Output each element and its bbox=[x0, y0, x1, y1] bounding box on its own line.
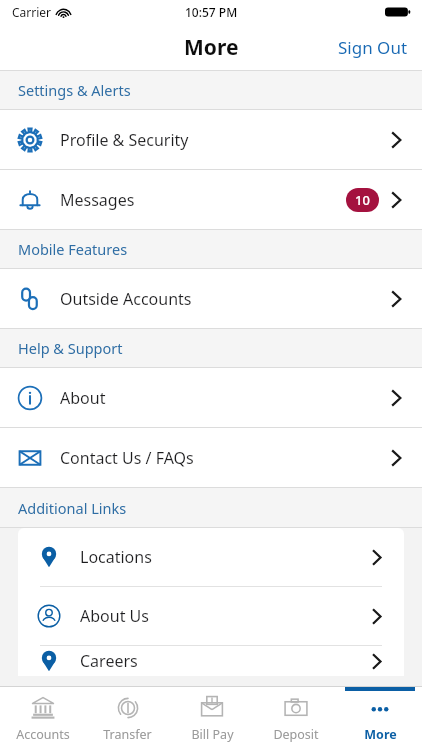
other: More bbox=[367, 695, 393, 721]
staticText: Careers bbox=[80, 650, 138, 672]
staticText: Additional Links bbox=[18, 498, 127, 518]
button[interactable]: Deposit bbox=[254, 687, 338, 750]
button[interactable]: About bbox=[0, 368, 422, 427]
other: Profile and security bbox=[17, 127, 43, 153]
button[interactable]: Profile and security bbox=[0, 110, 422, 169]
staticText: More bbox=[364, 726, 397, 743]
button[interactable]: Outside accounts bbox=[0, 269, 422, 328]
staticText: Carrier bbox=[12, 4, 52, 20]
staticText: Sign Out bbox=[338, 36, 408, 59]
other: Locations bbox=[37, 649, 61, 673]
other: About us bbox=[37, 604, 61, 628]
other: Deposit bbox=[283, 695, 309, 721]
button[interactable]: Locations bbox=[18, 528, 404, 586]
staticText: Locations bbox=[80, 546, 152, 568]
staticText: More bbox=[184, 33, 239, 62]
button[interactable]: Accounts bbox=[0, 687, 85, 750]
other: About bbox=[17, 385, 43, 411]
button[interactable]: More bbox=[338, 687, 422, 750]
other: Locations bbox=[37, 545, 61, 569]
staticText: About Us bbox=[80, 605, 149, 627]
staticText: About bbox=[60, 387, 106, 409]
staticText: Profile & Security bbox=[60, 129, 189, 151]
other: Messages bbox=[17, 187, 43, 213]
other: Outside accounts bbox=[17, 286, 43, 312]
staticText: Mobile Features bbox=[18, 239, 128, 259]
staticText: Messages bbox=[60, 189, 135, 211]
staticText: Bill Pay bbox=[191, 726, 234, 743]
staticText: Contact Us / FAQs bbox=[60, 447, 194, 469]
staticText: Help & Support bbox=[18, 338, 123, 358]
staticText: Accounts bbox=[16, 726, 70, 743]
other: Transfer bbox=[115, 695, 141, 721]
staticText: 10:57 PM bbox=[185, 4, 238, 20]
other: Bill Pay bbox=[199, 695, 225, 721]
button[interactable]: About us bbox=[18, 587, 404, 645]
button[interactable]: Sign Out bbox=[324, 28, 422, 67]
staticText: Deposit bbox=[273, 726, 319, 743]
button[interactable]: Bill Pay bbox=[170, 687, 254, 750]
staticText: Settings & Alerts bbox=[18, 80, 131, 100]
button[interactable]: Transfer bbox=[85, 687, 170, 750]
staticText: Outside Accounts bbox=[60, 288, 192, 310]
staticText: 10 bbox=[355, 191, 370, 209]
button[interactable]: Messages bbox=[0, 170, 422, 229]
button[interactable]: Locations bbox=[18, 646, 404, 676]
other: Contact us and FAQs bbox=[17, 445, 43, 471]
button[interactable]: Contact us and FAQs bbox=[0, 428, 422, 487]
other: Accounts bbox=[30, 695, 56, 721]
staticText: Transfer bbox=[103, 726, 152, 743]
